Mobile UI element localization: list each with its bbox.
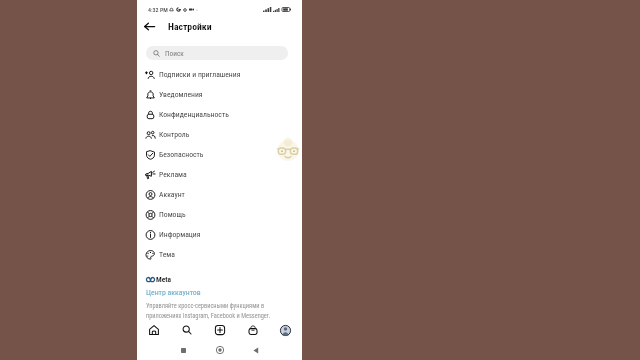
button[interactable]: Create <box>203 321 236 339</box>
staticText: Настройки <box>168 21 212 32</box>
button[interactable]: Подписки и приглашения <box>137 64 302 84</box>
button[interactable]: Поиск <box>146 46 288 60</box>
staticText: Безопасность <box>159 150 204 159</box>
button[interactable]: Помощь <box>137 204 302 224</box>
staticText: Управляйте кросс-сервисными функциями в … <box>146 302 277 319</box>
button[interactable]: Реклама <box>137 164 302 184</box>
button[interactable]: Безопасность <box>137 144 302 164</box>
staticText: Тема <box>159 250 175 259</box>
button[interactable]: Центр аккаунтов <box>146 288 201 297</box>
staticText: Уведомления <box>159 90 203 99</box>
staticText: 4:32 PM <box>148 6 168 13</box>
staticText: Информация <box>159 230 201 239</box>
button[interactable]: Search <box>170 321 203 339</box>
staticText: Контроль <box>159 130 190 139</box>
staticText: Реклама <box>159 170 187 179</box>
button[interactable]: Reels <box>236 321 269 339</box>
staticText: Поиск <box>165 49 184 58</box>
button[interactable]: Тема <box>137 244 302 264</box>
staticText: Конфиденциальность <box>159 110 229 119</box>
button[interactable]: Profile <box>269 321 302 339</box>
staticText: Аккаунт <box>159 190 185 199</box>
staticText: Meta <box>156 275 172 284</box>
button[interactable]: Back <box>141 18 158 35</box>
button[interactable]: Recents <box>176 342 190 358</box>
button[interactable]: Контроль <box>137 124 302 144</box>
button[interactable]: Home <box>213 342 227 358</box>
staticText: Помощь <box>159 210 186 219</box>
button[interactable]: Информация <box>137 224 302 244</box>
staticText: Подписки и приглашения <box>159 70 241 79</box>
button[interactable]: Back <box>249 342 263 358</box>
button[interactable]: Уведомления <box>137 84 302 104</box>
button[interactable]: Аккаунт <box>137 184 302 204</box>
button[interactable]: Конфиденциальность <box>137 104 302 124</box>
button[interactable]: Home <box>137 321 170 339</box>
